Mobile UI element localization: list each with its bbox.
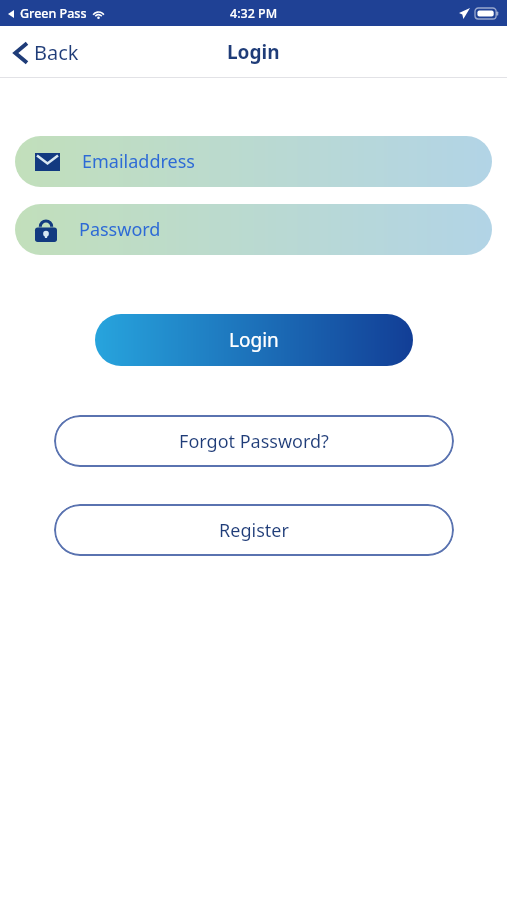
button[interactable]: Login [95,314,413,366]
button[interactable]: Emailaddress [15,136,492,187]
staticText: 4:32 PM [230,5,278,22]
staticText: Register [219,518,289,543]
button[interactable]: Back [10,33,83,72]
button[interactable]: Password [15,204,492,255]
staticText: Emailaddress [82,149,195,174]
staticText: Back [34,39,79,66]
button[interactable]: Forgot Password? [54,415,454,467]
button[interactable]: Register [54,504,454,556]
staticText: Forgot Password? [179,429,329,454]
staticText: Login [229,327,279,353]
staticText: Login [227,39,280,65]
staticText: Password [79,217,161,242]
staticText: Green Pass [20,5,87,22]
